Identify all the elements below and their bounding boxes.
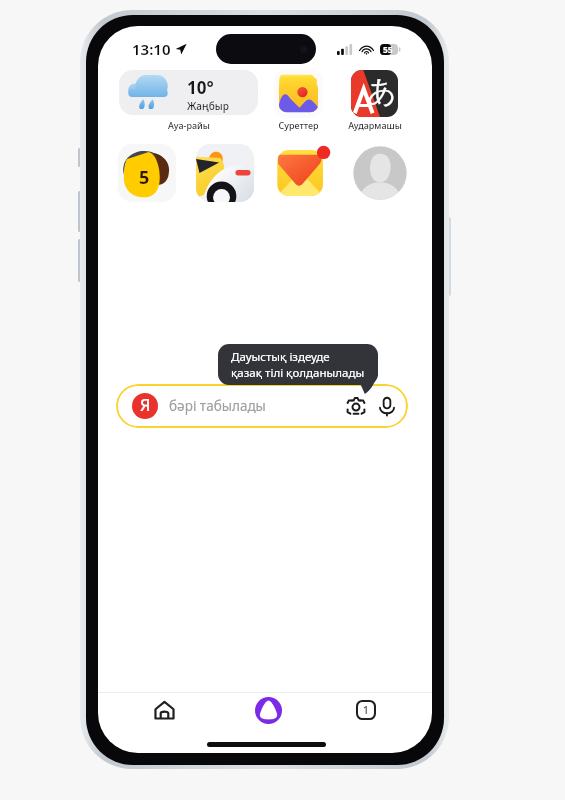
button[interactable] [351, 144, 409, 202]
button[interactable]: あ [351, 70, 398, 117]
button[interactable]: Я [116, 384, 408, 428]
staticText: 5 [139, 165, 150, 190]
button[interactable]: 5 [118, 144, 176, 202]
button[interactable]: 10° [119, 70, 258, 115]
staticText: あ [367, 73, 397, 110]
button[interactable]: Home [138, 688, 190, 732]
button[interactable] [196, 144, 254, 202]
staticText: Ауа-райы [168, 119, 210, 131]
staticText: Я [140, 394, 151, 416]
button[interactable]: Alice assistant [242, 688, 294, 732]
staticText: 13:10 [132, 39, 171, 59]
button[interactable] [274, 69, 323, 118]
staticText: 10° [187, 76, 214, 99]
button[interactable] [274, 144, 332, 202]
staticText: Жаңбыр [187, 99, 229, 113]
staticText: Суреттер [278, 119, 319, 131]
button[interactable]: Voice search [379, 397, 395, 416]
staticText: 1 [363, 703, 369, 717]
button[interactable]: Tabs [340, 688, 392, 732]
staticText: Аудармашы [348, 119, 402, 131]
staticText: 55 [383, 44, 393, 55]
staticText: Дауыстық іздеуде қазақ тілі қолданылады [231, 349, 365, 380]
staticText: бәрі табылады [169, 397, 266, 415]
button[interactable]: Search by image [346, 397, 366, 415]
